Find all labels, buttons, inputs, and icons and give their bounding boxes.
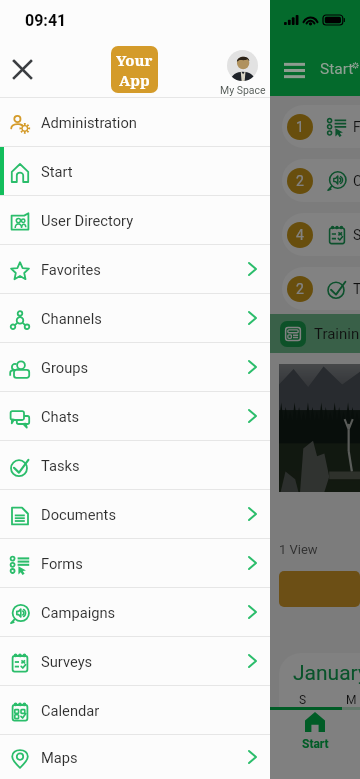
button[interactable]: Start bbox=[0, 147, 270, 195]
staticText: 09:41 bbox=[25, 11, 67, 30]
button[interactable] bbox=[279, 571, 360, 607]
staticText: Administration bbox=[41, 114, 137, 131]
staticText: Favorites bbox=[41, 261, 101, 278]
button[interactable]: Close navigation drawer bbox=[4, 51, 40, 87]
button[interactable]: Open navigation menu bbox=[278, 56, 311, 84]
button[interactable]: Maps bbox=[0, 735, 270, 779]
staticText: M bbox=[346, 693, 357, 707]
staticText: Your bbox=[116, 50, 153, 70]
button[interactable]: Administration bbox=[0, 98, 270, 146]
staticText: Start bbox=[41, 163, 73, 180]
button[interactable]: Training & Events bbox=[280, 314, 360, 353]
button[interactable]: My Space bbox=[213, 50, 272, 96]
button[interactable]: 2 bbox=[282, 267, 360, 310]
staticText: Documents bbox=[41, 506, 116, 523]
button[interactable]: Tasks bbox=[0, 441, 270, 489]
staticText: Training & Events bbox=[314, 325, 360, 343]
staticText: Channels bbox=[41, 310, 102, 327]
button[interactable]: 2 bbox=[282, 159, 360, 202]
staticText: Start bbox=[302, 737, 329, 751]
staticText: My Space bbox=[220, 84, 266, 96]
button[interactable]: User Directory bbox=[0, 196, 270, 244]
staticText: Surveys bbox=[353, 227, 360, 243]
button[interactable]: Start bbox=[278, 710, 352, 779]
button[interactable]: Documents bbox=[0, 490, 270, 538]
staticText: 4 bbox=[296, 227, 304, 243]
staticText: S bbox=[299, 693, 307, 707]
staticText: Groups bbox=[41, 359, 89, 376]
staticText: 1 bbox=[296, 119, 304, 135]
button[interactable]: Chats bbox=[0, 392, 270, 440]
button[interactable]: Groups bbox=[0, 343, 270, 391]
button[interactable]: Your bbox=[111, 46, 158, 93]
button[interactable]: Surveys bbox=[0, 637, 270, 685]
staticText: Maps bbox=[41, 749, 78, 766]
staticText: App bbox=[119, 70, 150, 90]
button[interactable]: Campaigns bbox=[0, 588, 270, 636]
staticText: Forms bbox=[41, 555, 83, 572]
staticText: Start bbox=[320, 60, 354, 78]
staticText: Forms bbox=[353, 119, 360, 135]
staticText: Tasks bbox=[41, 457, 80, 474]
staticText: Surveys bbox=[41, 653, 93, 670]
button[interactable]: Calendar bbox=[0, 686, 270, 734]
staticText: 2 bbox=[296, 173, 304, 189]
button[interactable]: 1 bbox=[282, 105, 360, 148]
staticText: 1 View bbox=[279, 542, 318, 557]
staticText: Campaigns bbox=[41, 604, 116, 621]
button[interactable]: Favorites bbox=[0, 245, 270, 293]
button[interactable]: Channels bbox=[0, 294, 270, 342]
staticText: Tasks bbox=[353, 281, 360, 297]
staticText: User Directory bbox=[41, 212, 134, 229]
staticText: Chats bbox=[41, 408, 80, 425]
staticText: Campaigns bbox=[353, 173, 360, 189]
staticText: January 2 bbox=[293, 661, 360, 686]
button[interactable]: 4 bbox=[282, 213, 360, 256]
staticText: 2 bbox=[296, 281, 304, 297]
staticText: Calendar bbox=[41, 702, 100, 719]
button[interactable]: Forms bbox=[0, 539, 270, 587]
